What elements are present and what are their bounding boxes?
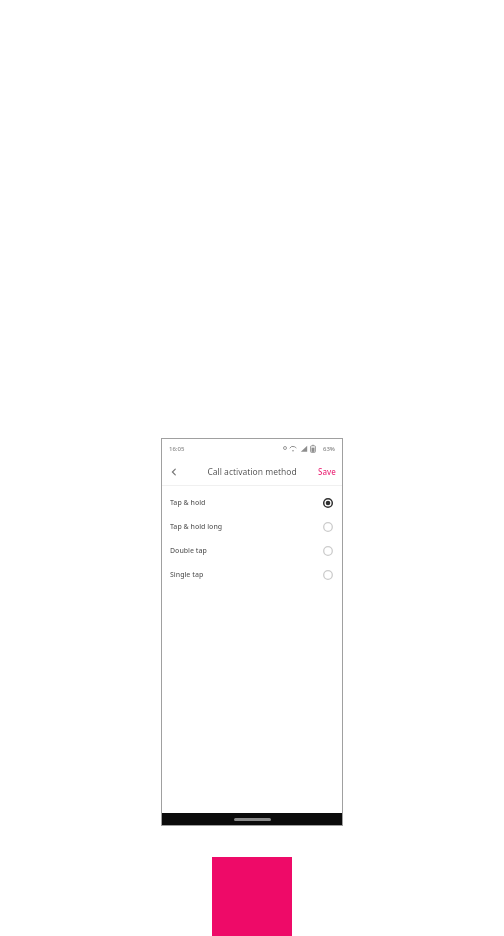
staticText: Tap & hold long xyxy=(170,522,223,532)
staticText: Save xyxy=(318,466,336,477)
staticText: Tap & hold xyxy=(170,498,206,508)
button[interactable]: Single tap xyxy=(162,563,342,587)
button[interactable]: Tap & hold xyxy=(162,491,342,515)
button[interactable]: Double tap xyxy=(162,539,342,563)
staticText: 16:05 xyxy=(169,445,185,453)
staticText: Single tap xyxy=(170,570,204,580)
staticText: Double tap xyxy=(170,546,207,556)
button[interactable]: Back xyxy=(162,460,186,484)
staticText: Call activation method xyxy=(207,466,297,478)
staticText: 63% xyxy=(323,445,335,453)
button[interactable]: Save xyxy=(312,461,342,482)
button[interactable]: Tap & hold long xyxy=(162,515,342,539)
